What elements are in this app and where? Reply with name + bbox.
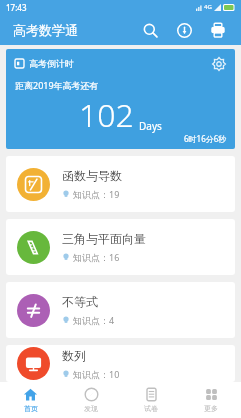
staticText: 102 (79, 93, 134, 137)
staticText: 距离2019年高考还有 (15, 79, 99, 91)
button[interactable]: Settings (208, 53, 230, 75)
staticText: 知识点：19 (73, 188, 120, 200)
button[interactable]: 试卷 (121, 382, 181, 418)
button[interactable]: 数列 (6, 345, 235, 382)
staticText: 知识点：16 (73, 251, 120, 263)
staticText: Days (139, 119, 162, 133)
button[interactable]: 发现 (61, 382, 121, 418)
staticText: 高考数学通 (13, 22, 78, 38)
staticText: 17:43 (6, 2, 27, 13)
staticText: 数列 (62, 348, 86, 363)
button[interactable]: 三角与平面向量 (6, 219, 235, 275)
staticText: 函数与导数 (62, 168, 122, 183)
button[interactable]: 首页 (0, 382, 61, 418)
button[interactable]: 函数与导数 (6, 156, 235, 212)
button[interactable]: Print (203, 15, 233, 45)
button[interactable]: 更多 (181, 382, 241, 418)
staticText: 三角与平面向量 (62, 231, 146, 246)
button[interactable]: Download (169, 15, 199, 45)
staticText: 更多 (204, 404, 218, 413)
staticText: 知识点：10 (73, 368, 120, 380)
staticText: 首页 (24, 404, 38, 413)
staticText: 试卷 (144, 404, 158, 413)
button[interactable]: 不等式 (6, 282, 235, 338)
button[interactable]: Search (135, 15, 165, 45)
staticText: 高考倒计时 (29, 58, 74, 69)
staticText: 不等式 (62, 294, 98, 309)
staticText: 知识点：4 (73, 314, 115, 326)
button[interactable]: 高考倒计时 (6, 49, 235, 149)
staticText: 发现 (84, 404, 98, 413)
staticText: 6时16分6秒 (184, 133, 227, 144)
staticText: 4G (204, 3, 212, 11)
